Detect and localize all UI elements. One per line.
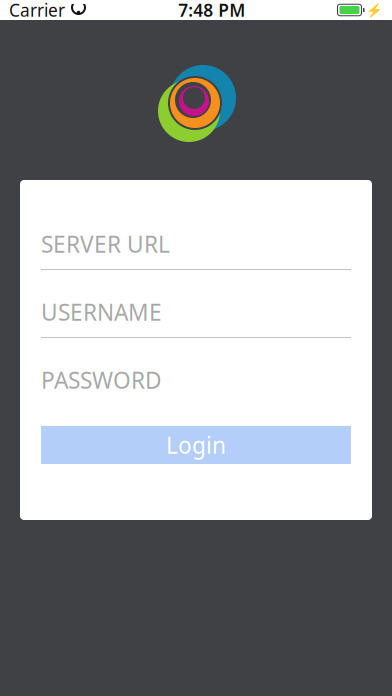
staticText: Login bbox=[166, 430, 226, 460]
staticText: 7:48 PM bbox=[178, 0, 245, 21]
staticText: ⚡ bbox=[366, 2, 383, 18]
staticText: Carrier bbox=[9, 0, 65, 21]
staticText: PASSWORD bbox=[41, 365, 162, 395]
button[interactable]: Login bbox=[41, 426, 351, 464]
staticText: SERVER URL bbox=[41, 229, 170, 259]
staticText: USERNAME bbox=[41, 297, 162, 327]
